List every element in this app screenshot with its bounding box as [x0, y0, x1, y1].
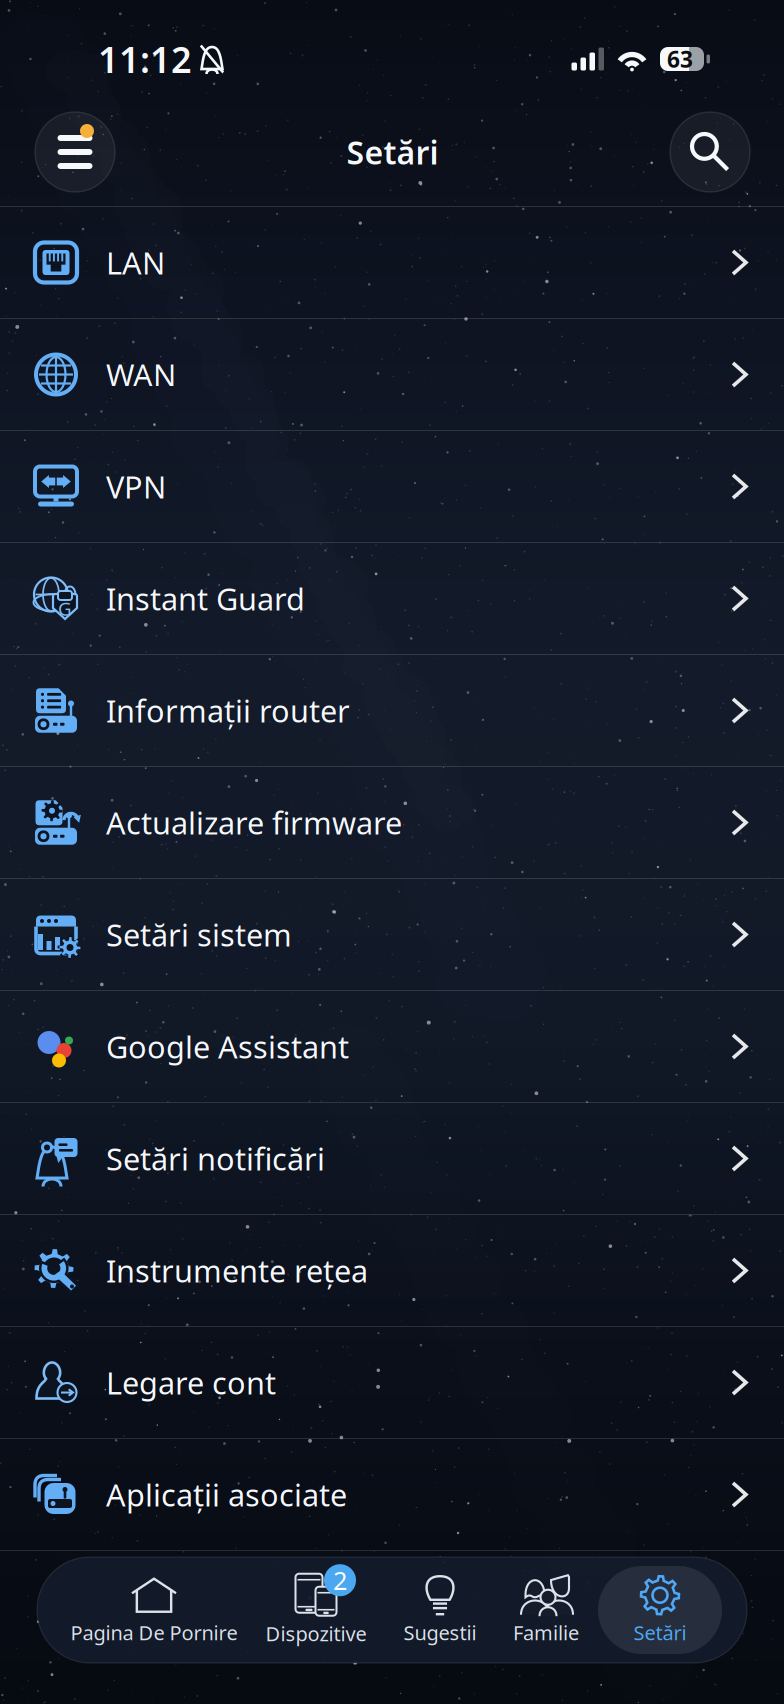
button[interactable]: Google Assistant [0, 991, 784, 1103]
staticText: Setări [346, 131, 438, 173]
button[interactable]: Menu [35, 112, 115, 192]
button[interactable]: Instrumente rețea [0, 1215, 784, 1327]
button[interactable]: LAN [0, 207, 784, 319]
staticText: Pagina De Pornire [70, 1619, 237, 1646]
button[interactable]: WAN [0, 319, 784, 431]
staticText: WAN [106, 354, 176, 395]
staticText: LAN [106, 242, 165, 283]
button[interactable]: Actualizare firmware [0, 767, 784, 879]
staticText: Aplicații asociate [106, 1474, 347, 1515]
staticText: Setări notificări [106, 1138, 325, 1179]
staticText: Sugestii [403, 1619, 476, 1646]
button[interactable]: Pagina De Pornire [62, 1566, 246, 1654]
button[interactable]: 2 [246, 1566, 386, 1654]
staticText: 63 [667, 44, 693, 74]
staticText: Familie [513, 1619, 579, 1646]
staticText: Instant Guard [106, 578, 305, 619]
button[interactable]: Setări [598, 1566, 722, 1654]
staticText: Setări [633, 1619, 686, 1646]
staticText: Google Assistant [106, 1026, 349, 1067]
staticText: Actualizare firmware [106, 802, 402, 843]
button[interactable]: Search [670, 112, 750, 192]
staticText: G [58, 596, 72, 621]
button[interactable]: Informații router [0, 655, 784, 767]
button[interactable]: Setări sistem [0, 879, 784, 991]
button[interactable]: G [0, 543, 784, 655]
staticText: Dispozitive [265, 1620, 366, 1647]
staticText: 11:12 [98, 35, 192, 83]
staticText: VPN [106, 466, 166, 507]
staticText: Setări sistem [106, 914, 292, 955]
button[interactable]: Sugestii [386, 1566, 494, 1654]
button[interactable]: VPN [0, 431, 784, 543]
staticText: Legare cont [106, 1362, 276, 1403]
staticText: 2 [333, 1563, 347, 1597]
staticText: Instrumente rețea [106, 1250, 368, 1291]
button[interactable]: Familie [494, 1566, 598, 1654]
button[interactable]: Setări notificări [0, 1103, 784, 1215]
button[interactable]: Legare cont [0, 1327, 784, 1439]
staticText: Informații router [106, 690, 350, 731]
button[interactable]: Aplicații asociate [0, 1439, 784, 1551]
